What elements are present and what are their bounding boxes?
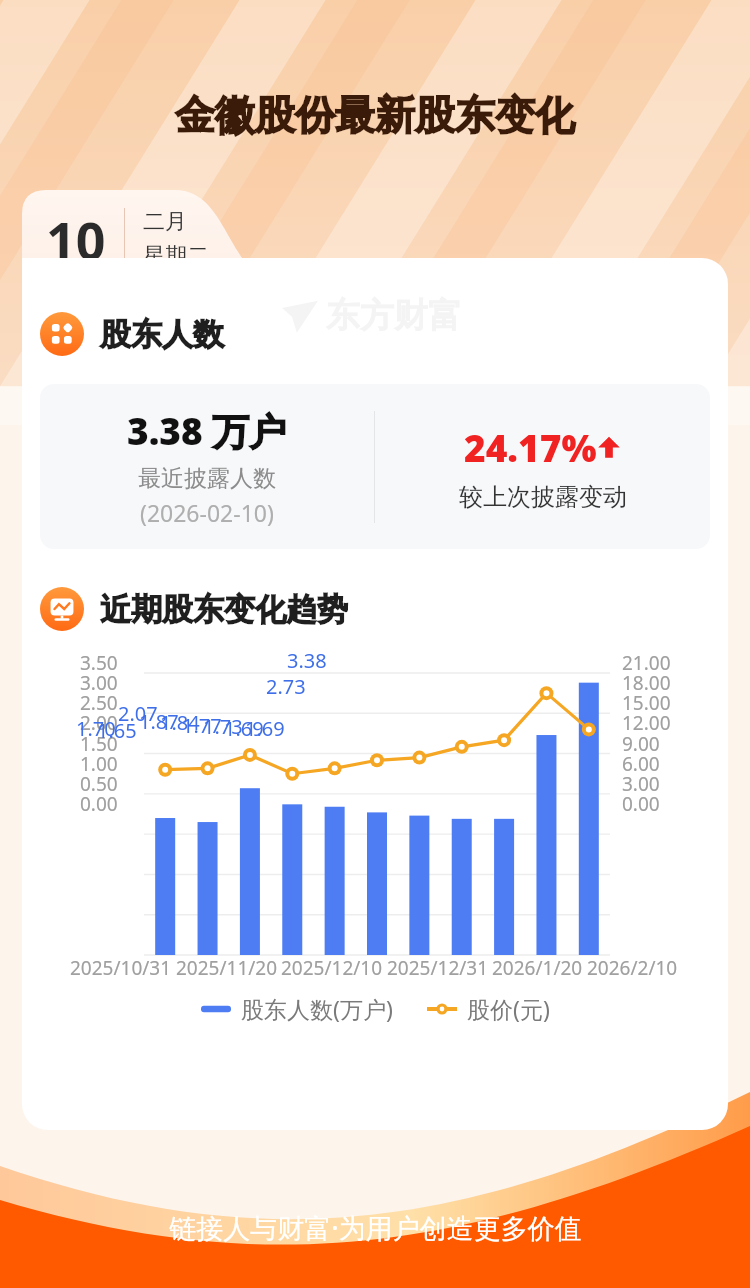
button[interactable]: 股东人数 bbox=[40, 312, 224, 356]
staticText: 二月 bbox=[143, 208, 187, 236]
staticText: 2025/10/31 bbox=[70, 955, 172, 981]
staticText: 2025/12/31 bbox=[387, 955, 489, 981]
staticText: 9.00 bbox=[622, 731, 660, 757]
staticText: 2.00 bbox=[80, 710, 118, 736]
staticText: 3.00 bbox=[622, 771, 660, 797]
staticText: 24.17% bbox=[464, 422, 597, 472]
staticText: 1.00 bbox=[80, 751, 118, 777]
staticText: 1.69 bbox=[224, 715, 264, 742]
staticText: 3.00 bbox=[80, 670, 118, 696]
staticText: 2026/2/10 bbox=[587, 955, 678, 981]
staticText: 21.00 bbox=[622, 650, 671, 676]
staticText: 股价(元) bbox=[467, 993, 550, 1024]
staticText: 3.50 bbox=[80, 650, 118, 676]
staticText: 近期股东变化趋势 bbox=[100, 590, 348, 629]
staticText: 1.77 bbox=[182, 712, 222, 739]
staticText: 3.38 bbox=[287, 647, 327, 674]
staticText: 2026/1/20 bbox=[492, 955, 583, 981]
staticText: 15.00 bbox=[622, 690, 671, 716]
staticText: 星期二 bbox=[143, 242, 209, 270]
button[interactable]: 3.38 万户 bbox=[40, 384, 710, 549]
staticText: 较上次披露变动 bbox=[459, 482, 627, 512]
staticText: 2.73 bbox=[266, 673, 306, 700]
staticText: 1.87 bbox=[139, 708, 179, 735]
staticText: 18.00 bbox=[622, 670, 671, 696]
staticText: 12.00 bbox=[622, 710, 671, 736]
staticText: 6.00 bbox=[622, 751, 660, 777]
staticText: 链接人与财富·为用户创造更多价值 bbox=[169, 1209, 582, 1246]
staticText: (2026-02-10) bbox=[140, 497, 274, 528]
staticText: 金徽股份最新股东变化 bbox=[0, 90, 750, 140]
staticText: 0.00 bbox=[622, 791, 660, 817]
staticText: 1.73 bbox=[203, 713, 243, 740]
staticText: 1.84 bbox=[160, 709, 200, 736]
staticText: 1.65 bbox=[97, 717, 137, 744]
staticText: 股东人数(万户) bbox=[241, 993, 393, 1024]
staticText: 东方财富 bbox=[326, 294, 462, 337]
staticText: 1.50 bbox=[80, 731, 118, 757]
staticText: 10 bbox=[46, 204, 106, 275]
other: 近期股东变化趋势 bbox=[40, 587, 84, 631]
other: 股东人数 bbox=[40, 312, 84, 356]
button[interactable]: 近期股东变化趋势 bbox=[40, 587, 348, 631]
staticText: 2.07 bbox=[118, 700, 158, 727]
staticText: 3.38 万户 bbox=[127, 405, 287, 456]
staticText: 2025/12/10 bbox=[281, 955, 383, 981]
staticText: 0.50 bbox=[80, 771, 118, 797]
staticText: 1.69 bbox=[245, 715, 285, 742]
staticText: 2.50 bbox=[80, 690, 118, 716]
staticText: 最近披露人数 bbox=[138, 464, 276, 493]
staticText: 股东人数 bbox=[100, 315, 224, 354]
staticText: 1.70 bbox=[76, 715, 116, 742]
staticText: 0.00 bbox=[80, 791, 118, 817]
staticText: 2025/11/20 bbox=[176, 955, 278, 981]
